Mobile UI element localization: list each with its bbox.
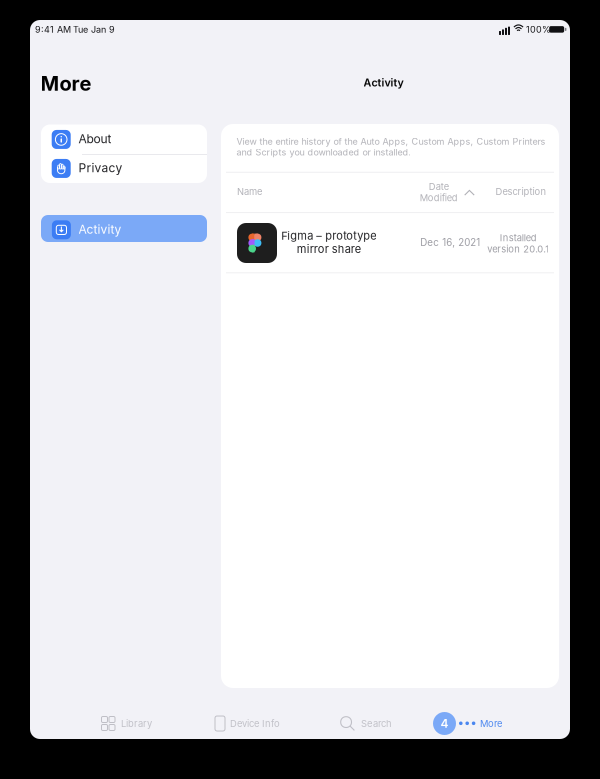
staticText: 100%: [526, 24, 551, 35]
staticText: Device Info: [230, 718, 280, 729]
staticText: Figma – prototype mirror share: [281, 229, 376, 256]
staticText: View the entire history of the Auto Apps…: [236, 136, 545, 158]
staticText: Date Modified: [419, 181, 457, 204]
staticText: Library: [121, 718, 152, 729]
button[interactable]: Device Info: [30, 705, 98, 741]
staticText: 4: [440, 716, 448, 731]
staticText: Tue Jan 9: [73, 24, 115, 35]
staticText: Privacy: [78, 161, 122, 175]
staticText: About: [78, 132, 111, 146]
staticText: Description: [495, 186, 546, 197]
button[interactable]: 4: [30, 705, 102, 741]
staticText: Search: [361, 718, 392, 729]
button[interactable]: Activity: [41, 215, 207, 242]
staticText: Activity: [78, 222, 121, 236]
staticText: Name: [237, 186, 262, 197]
staticText: More: [41, 71, 92, 96]
button[interactable]: Privacy: [41, 124, 207, 153]
staticText: Installed version 20.0.1: [487, 232, 549, 255]
staticText: Dec 16, 2021: [420, 237, 480, 248]
button[interactable]: Library: [30, 705, 88, 741]
button[interactable]: Search: [30, 705, 88, 741]
staticText: More: [480, 718, 502, 729]
button[interactable]: About: [41, 124, 207, 153]
staticText: 9:41 AM: [35, 24, 71, 35]
staticText: Activity: [363, 76, 403, 89]
